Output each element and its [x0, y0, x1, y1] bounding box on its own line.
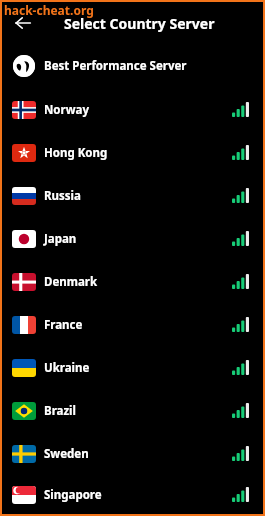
button[interactable]: Norway — [2, 88, 263, 131]
button[interactable]: Back — [9, 9, 37, 37]
staticText: Best Performance Server — [44, 58, 187, 74]
staticText: France — [44, 317, 83, 333]
button[interactable]: Brazil — [2, 389, 263, 432]
staticText: Hong Kong — [44, 145, 108, 161]
button[interactable]: Sweden — [2, 432, 263, 475]
button[interactable]: Denmark — [2, 260, 263, 303]
staticText: Select Country Server — [64, 14, 215, 33]
staticText: Singapore — [44, 487, 102, 503]
staticText: hack-cheat.org — [4, 2, 94, 18]
staticText: Russia — [44, 188, 81, 204]
button[interactable]: Singapore — [2, 475, 263, 514]
button[interactable]: Japan — [2, 217, 263, 260]
button[interactable]: Hong Kong — [2, 131, 263, 174]
staticText: Japan — [44, 231, 77, 247]
button[interactable]: Russia — [2, 174, 263, 217]
staticText: Ukraine — [44, 360, 90, 376]
button[interactable]: France — [2, 303, 263, 346]
staticText: Brazil — [44, 403, 76, 419]
staticText: Denmark — [44, 274, 98, 290]
button[interactable]: Ukraine — [2, 346, 263, 389]
button[interactable]: Best Performance Server — [2, 44, 263, 88]
staticText: Sweden — [44, 446, 89, 462]
staticText: Norway — [44, 102, 89, 118]
